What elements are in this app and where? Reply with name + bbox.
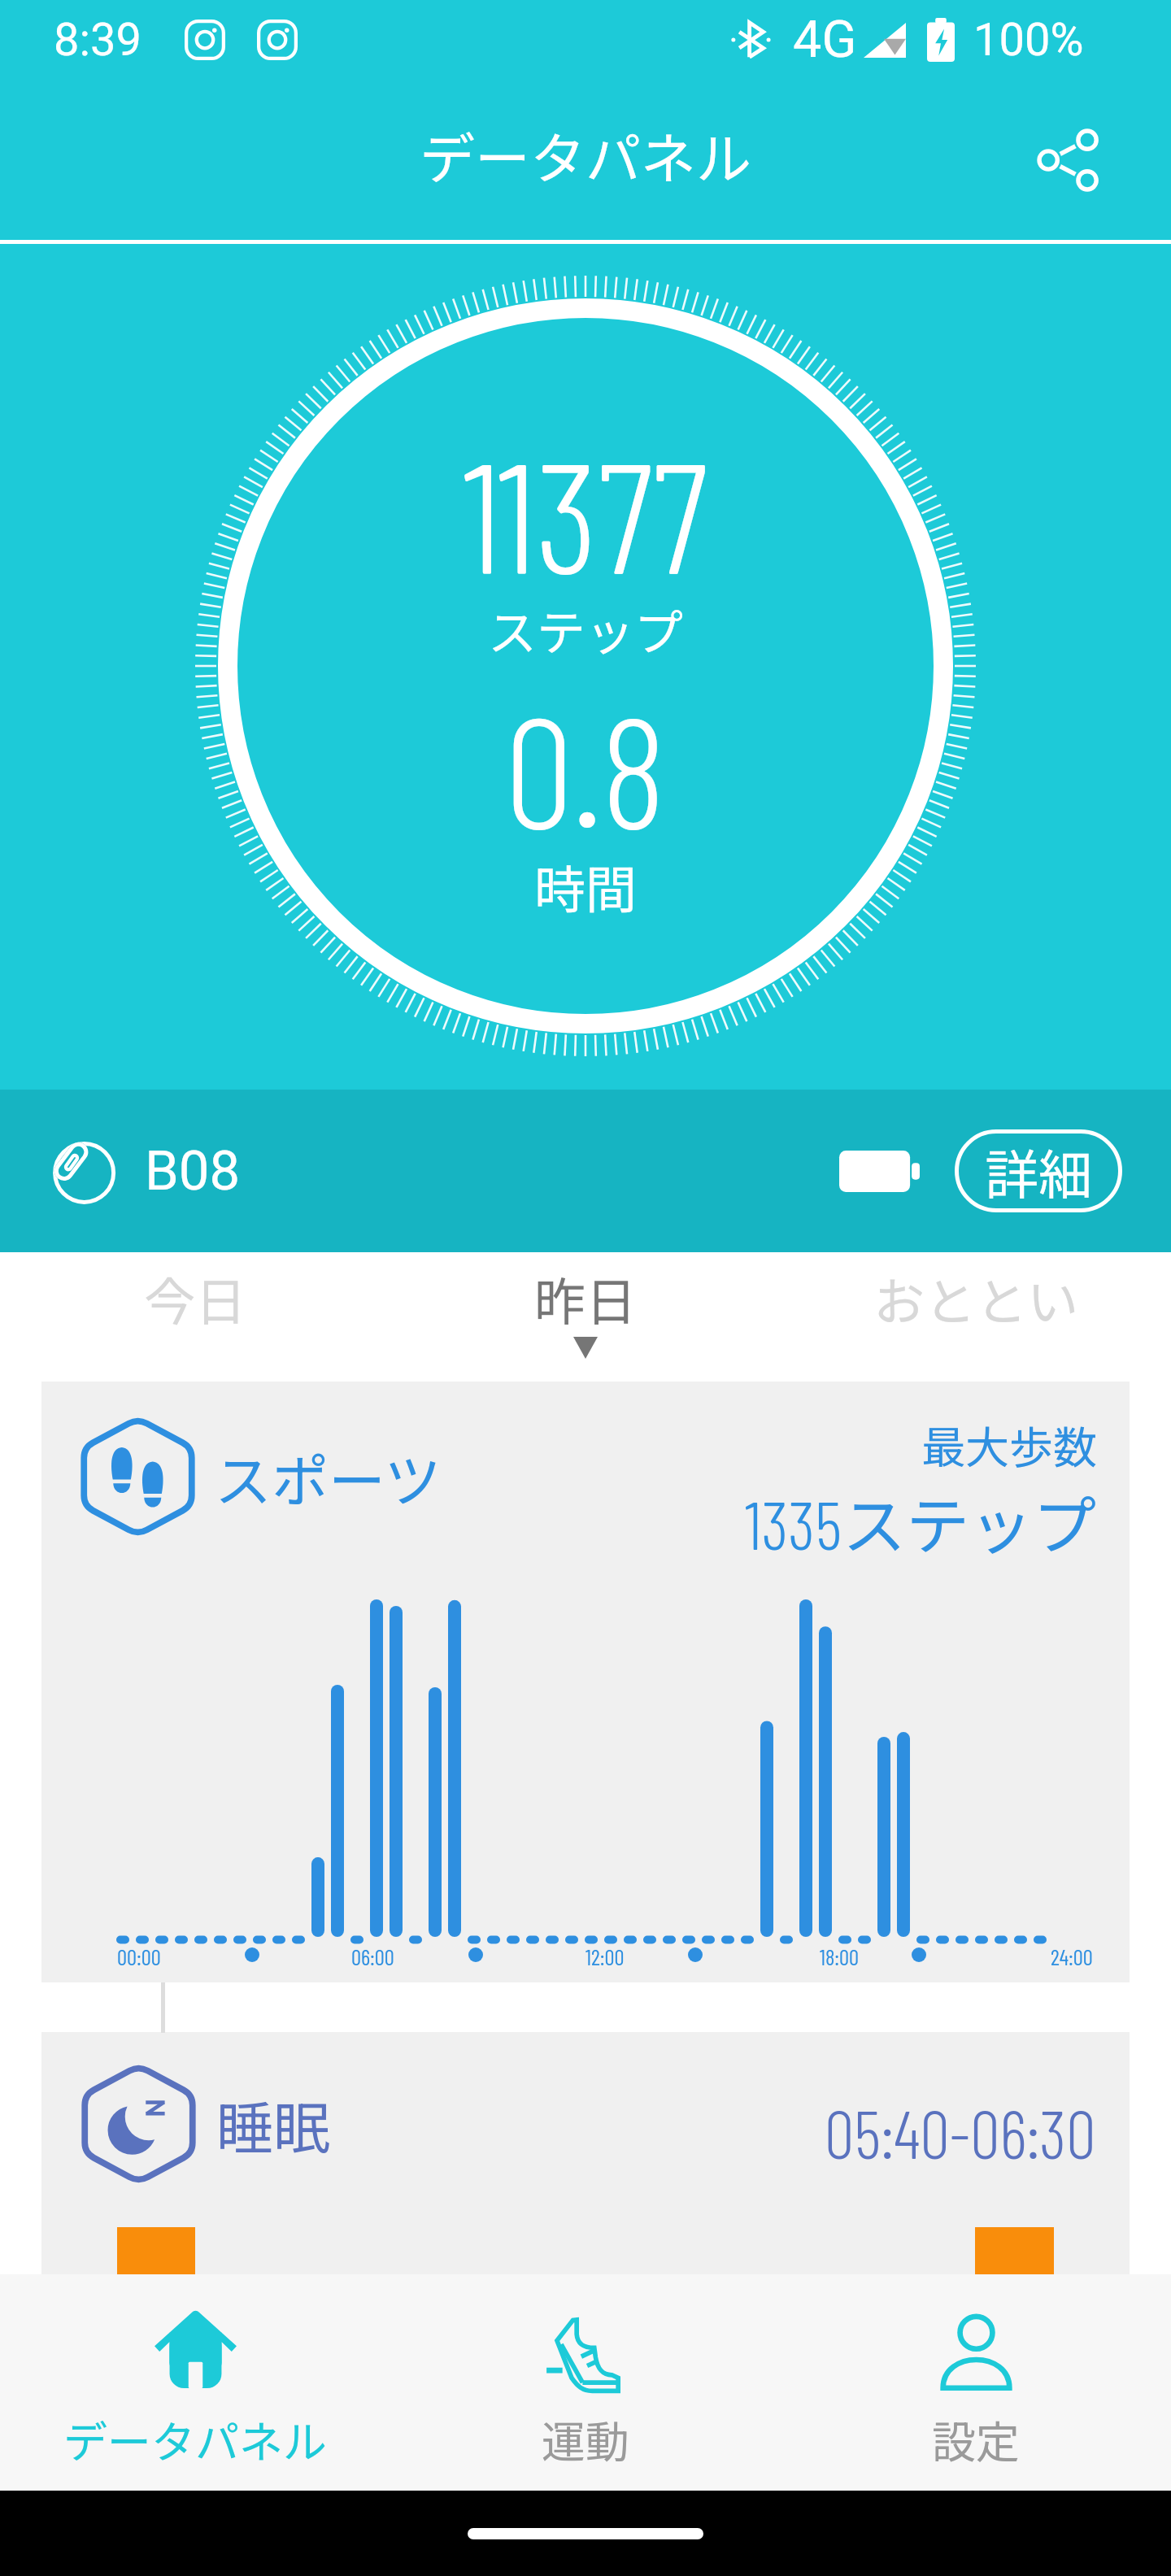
staticText: 昨日 [534,1261,637,1335]
button[interactable]: 設定 [781,2274,1171,2491]
staticText: 0.8 [505,674,666,859]
staticText: 1335 [745,1483,842,1563]
staticText: 詳細 [985,1132,1092,1210]
staticText: 100% [973,13,1084,67]
staticText: 運動 [542,2407,629,2470]
staticText: B08 [145,1139,241,1203]
staticText: 設定 [932,2407,1020,2470]
staticText: 06:00 [351,1943,394,1969]
button[interactable]: スポーツ [41,1382,1130,1982]
staticText: ステップ [488,594,683,664]
button[interactable]: 睡眠 [41,2032,1130,2325]
staticText: 4G [793,10,857,70]
staticText: 今日 [144,1261,246,1335]
button[interactable]: Share [1016,108,1121,212]
button[interactable]: おととい [781,1252,1171,1382]
staticText: 24:00 [1051,1943,1093,1969]
button[interactable]: B08 [0,1090,1171,1252]
staticText: 00:00 [117,1943,161,1969]
staticText: データパネル [63,2407,327,2470]
staticText: 最大歩数 [921,1412,1097,1476]
staticText: データパネル [420,115,752,194]
staticText: 8:39 [54,13,141,67]
staticText: 12:00 [585,1943,625,1969]
staticText: 睡眠 [216,2083,330,2165]
button[interactable]: 今日 [0,1252,390,1382]
staticText: 05:40-06:30 [825,2092,1096,2172]
button[interactable]: 詳細 [955,1129,1122,1212]
button[interactable]: 昨日 [390,1252,781,1382]
staticText: 18:00 [820,1943,859,1969]
button[interactable]: データパネル [0,2274,390,2491]
staticText: スポーツ [215,1436,442,1518]
staticText: 時間 [534,849,637,923]
staticText: おととい [873,1261,1078,1335]
staticText: 11377 [463,420,708,605]
button[interactable]: 運動 [390,2274,781,2491]
staticText: ステップ [842,1476,1097,1568]
